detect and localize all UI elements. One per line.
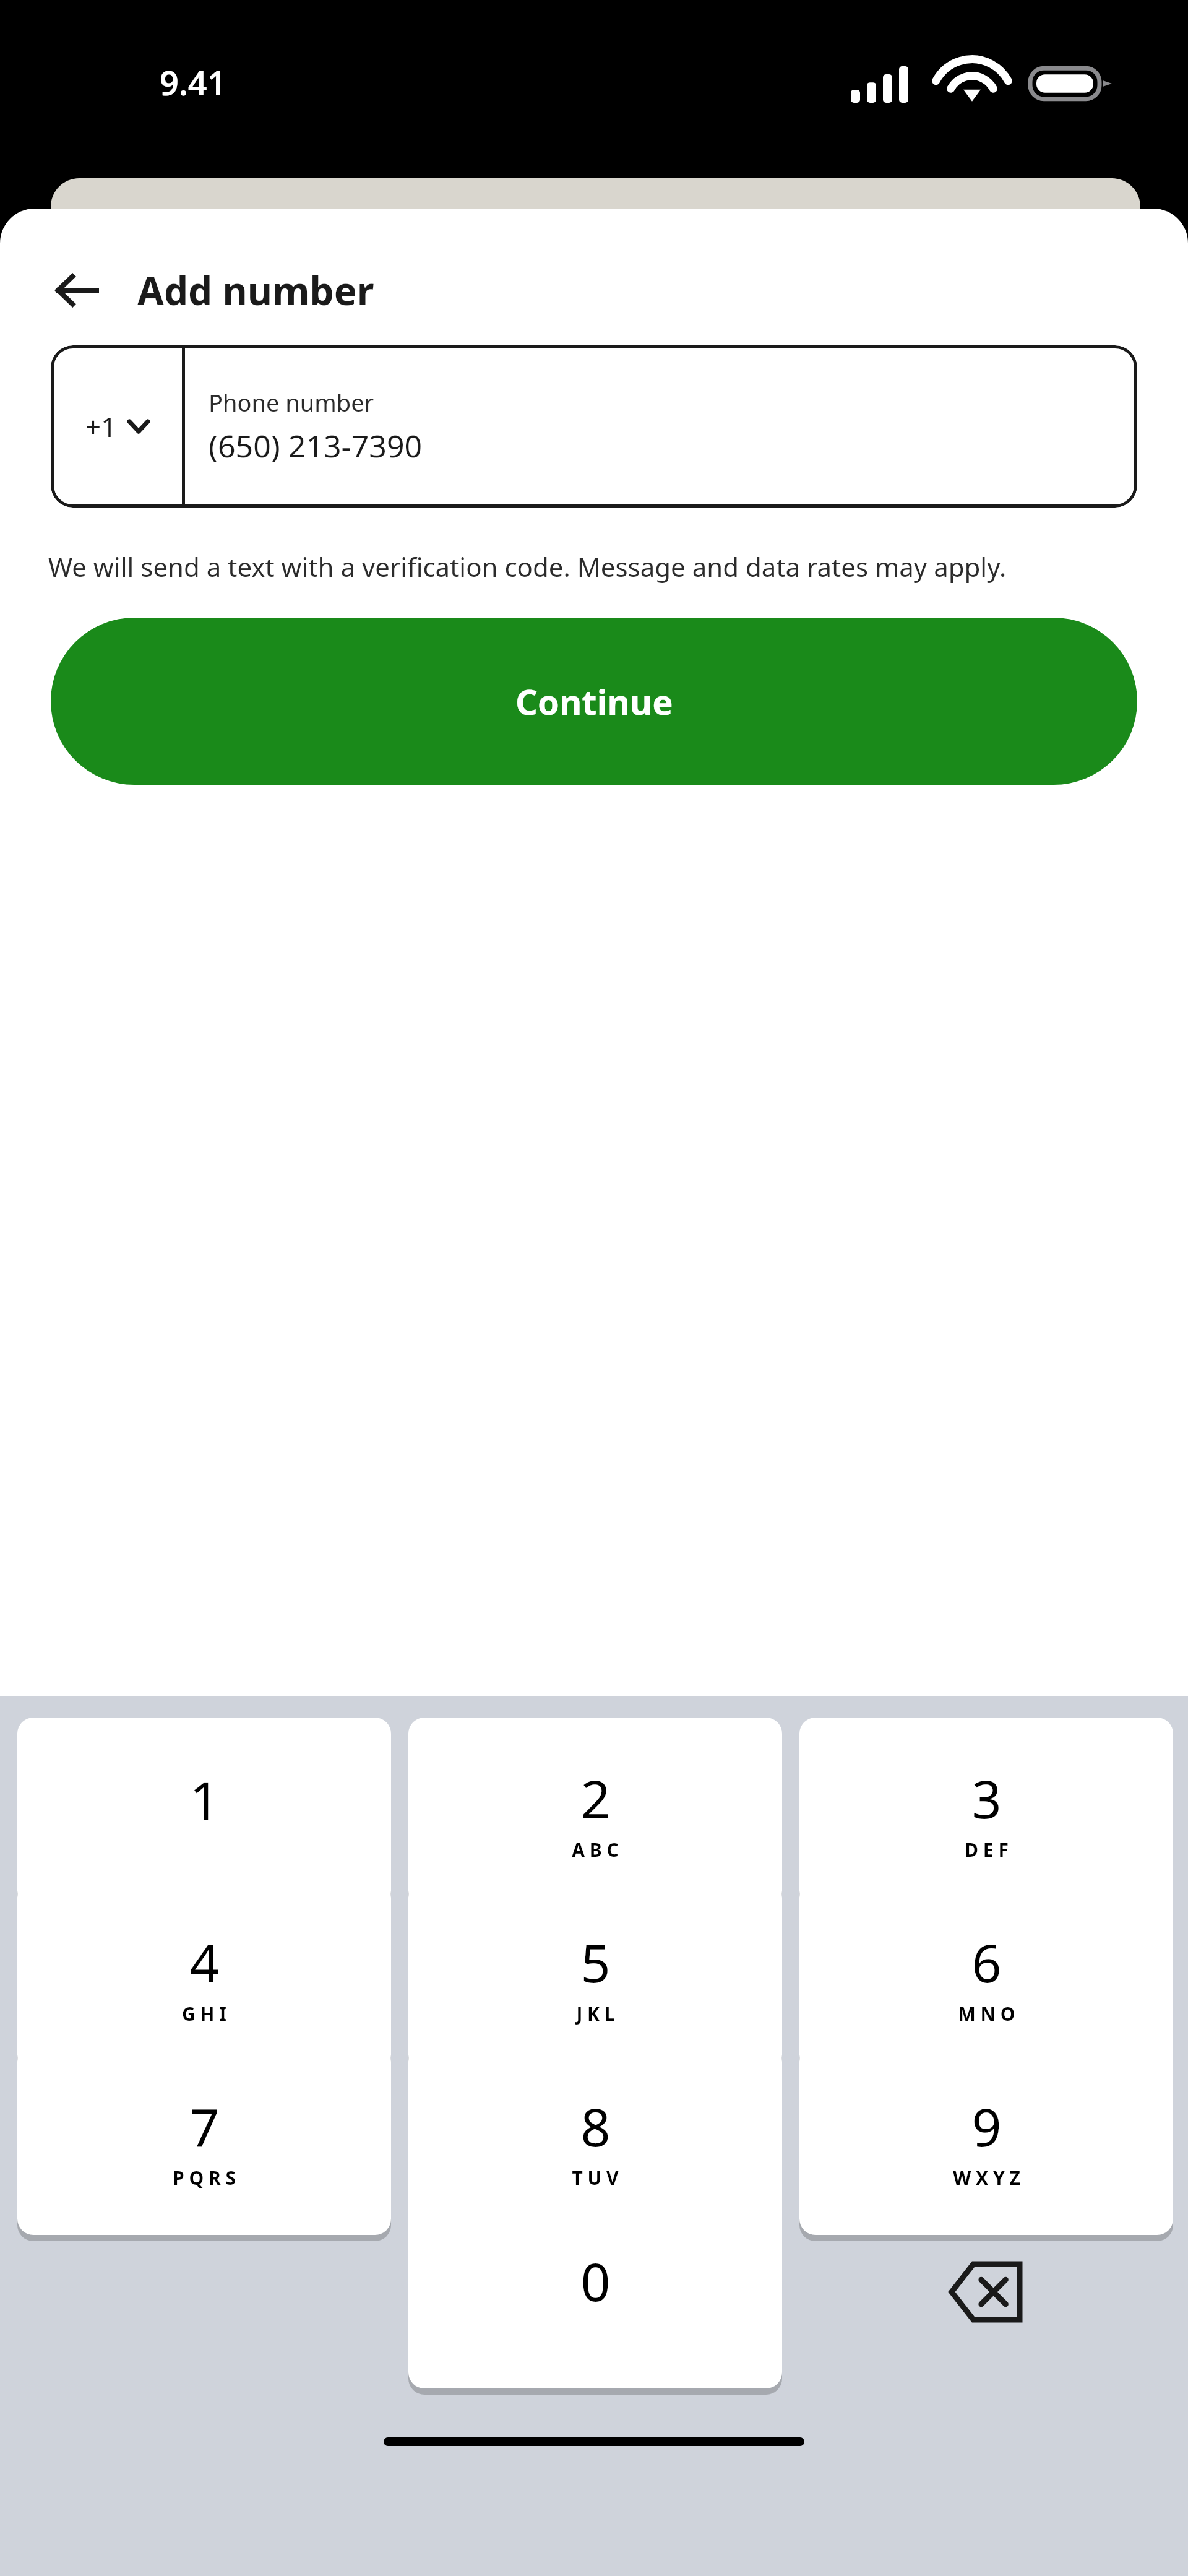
staticText: 6: [971, 1927, 1002, 1997]
button[interactable]: 7: [17, 2046, 391, 2235]
button[interactable]: Phone number: [185, 345, 1137, 508]
button[interactable]: 5: [408, 1882, 782, 2071]
button[interactable]: 8: [408, 2046, 782, 2235]
staticText: 7: [189, 2091, 220, 2161]
staticText: We will send a text with a verification …: [48, 549, 1007, 584]
button[interactable]: 4: [17, 1882, 391, 2071]
staticText: M N O: [958, 2001, 1015, 2026]
button[interactable]: 9: [799, 2046, 1173, 2235]
button[interactable]: +1: [51, 345, 182, 508]
staticText: +1: [85, 408, 117, 445]
button[interactable]: 0: [408, 2199, 782, 2388]
staticText: T U V: [572, 2165, 619, 2190]
staticText: 1: [189, 1764, 220, 1835]
staticText: Phone number: [209, 386, 374, 418]
staticText: 5: [580, 1927, 611, 1997]
button[interactable]: 1: [17, 1718, 391, 1907]
staticText: 4: [189, 1927, 220, 1997]
staticText: Continue: [515, 678, 673, 725]
staticText: 0: [580, 2245, 611, 2316]
staticText: 3: [971, 1763, 1002, 1833]
button[interactable]: 3: [799, 1718, 1173, 1907]
staticText: G H I: [182, 2001, 226, 2026]
button[interactable]: Continue: [51, 618, 1137, 785]
staticText: 9.41: [160, 59, 226, 105]
staticText: D E F: [965, 1837, 1009, 1862]
staticText: Add number: [137, 264, 374, 316]
button[interactable]: 6: [799, 1882, 1173, 2071]
staticText: 9: [971, 2091, 1002, 2161]
staticText: 2: [580, 1763, 611, 1833]
staticText: J K L: [576, 2001, 615, 2026]
staticText: P Q R S: [173, 2165, 236, 2190]
button[interactable]: 2: [408, 1718, 782, 1907]
staticText: A B C: [572, 1837, 619, 1862]
button[interactable]: Backspace: [799, 2199, 1173, 2385]
staticText: W X Y Z: [953, 2165, 1020, 2190]
button[interactable]: Back: [47, 261, 106, 320]
staticText: (650) 213-7390: [209, 425, 423, 467]
staticText: 8: [580, 2091, 611, 2161]
